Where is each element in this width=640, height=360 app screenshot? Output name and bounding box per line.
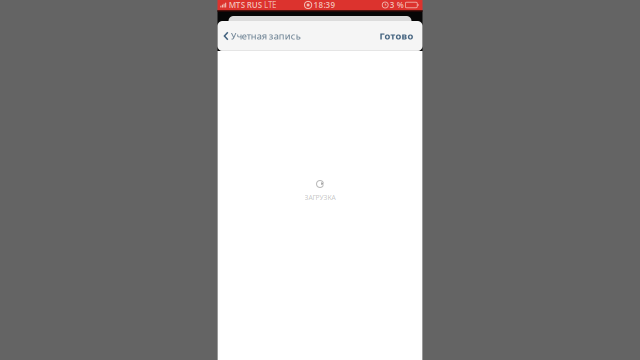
button[interactable]: Учетная запись: [217, 24, 305, 48]
button[interactable]: Готово: [373, 24, 422, 48]
staticText: ЗАГРУЗКА: [304, 193, 335, 202]
staticText: 18:39: [313, 0, 335, 10]
staticText: 3 %: [390, 0, 404, 10]
staticText: Учетная запись: [231, 30, 301, 42]
staticText: MTS RUS: [229, 0, 262, 10]
staticText: Готово: [379, 30, 413, 42]
staticText: LTE: [264, 0, 276, 10]
